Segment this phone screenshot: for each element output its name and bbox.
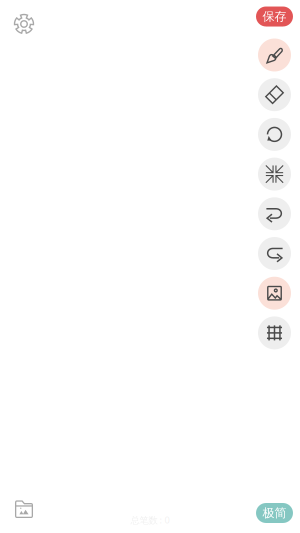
button[interactable]: Brush bbox=[258, 38, 291, 71]
button[interactable]: 保存 bbox=[256, 6, 293, 26]
button[interactable]: Settings bbox=[9, 9, 39, 39]
button[interactable]: Image bbox=[258, 277, 291, 310]
staticText: 保存 bbox=[262, 9, 286, 24]
button[interactable]: Gallery bbox=[9, 494, 39, 524]
button[interactable]: 极简 bbox=[256, 503, 293, 523]
button[interactable]: Rotate bbox=[258, 118, 291, 151]
staticText: 总笔数 : 0 bbox=[130, 514, 169, 526]
button[interactable]: Grid bbox=[258, 316, 291, 349]
staticText: 极简 bbox=[262, 506, 286, 520]
button[interactable]: Collapse bbox=[258, 158, 291, 191]
button[interactable]: Eraser bbox=[258, 78, 291, 111]
button[interactable]: Redo bbox=[258, 237, 291, 270]
button[interactable]: Undo bbox=[258, 197, 291, 230]
